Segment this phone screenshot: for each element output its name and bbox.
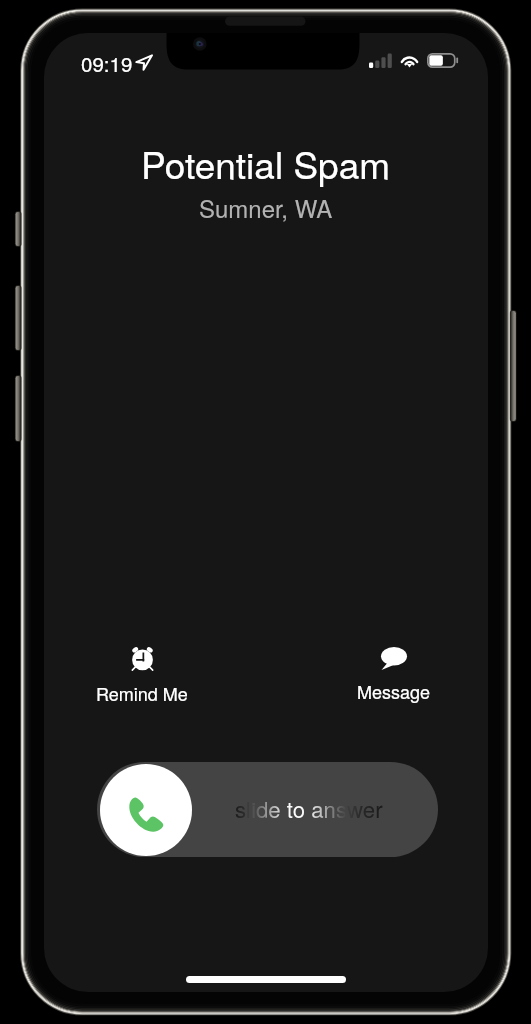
staticText: Message [357,678,431,704]
button[interactable]: slide to answer [97,762,438,857]
staticText: slide to answer [235,793,383,825]
button[interactable]: Remind Me [82,643,202,710]
staticText: 09:19 [81,48,133,77]
staticText: Potential Spam [141,137,391,190]
button[interactable]: Message [334,643,454,708]
staticText: Remind Me [96,680,188,706]
staticText: Sumner, WA [199,190,333,224]
button[interactable]: Answer call [100,764,192,856]
